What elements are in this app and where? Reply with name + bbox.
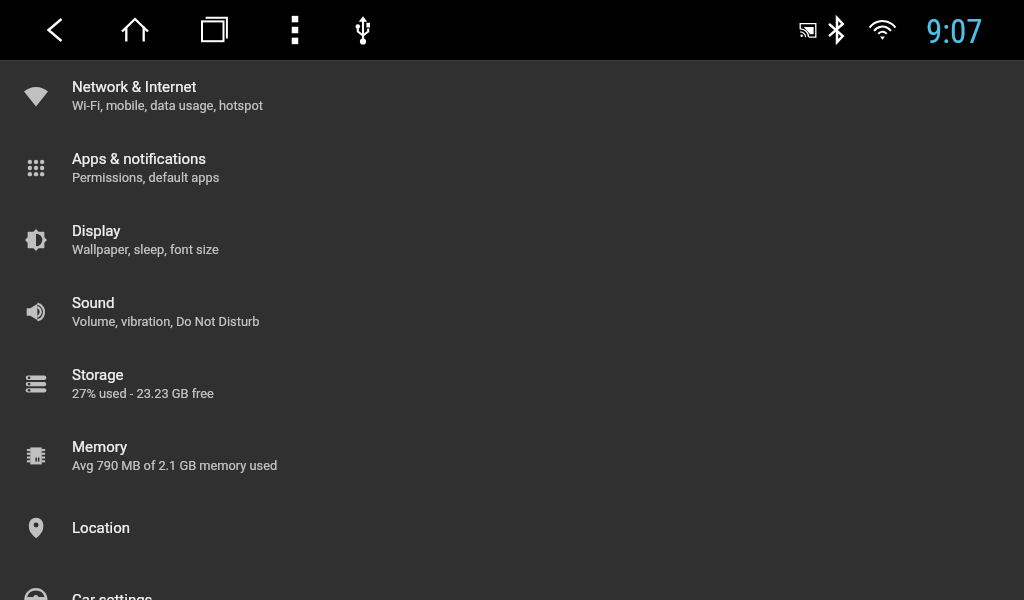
- staticText: Network & Internet: [72, 78, 197, 96]
- staticText: Wi-Fi, mobile, data usage, hotspot: [72, 98, 263, 113]
- button[interactable]: Bluetooth: [825, 15, 849, 45]
- staticText: Apps & notifications: [72, 150, 206, 168]
- button[interactable]: Home: [110, 8, 160, 52]
- button[interactable]: Display: [0, 204, 1024, 276]
- button[interactable]: Cast: [796, 19, 820, 41]
- button[interactable]: More options: [270, 8, 320, 52]
- staticText: Permissions, default apps: [72, 170, 220, 185]
- staticText: 27% used - 23.23 GB free: [72, 386, 214, 401]
- button[interactable]: Location: [0, 492, 1024, 564]
- staticText: Sound: [72, 294, 115, 312]
- button[interactable]: Back: [30, 8, 80, 52]
- staticText: Volume, vibration, Do Not Disturb: [72, 314, 260, 329]
- staticText: Memory: [72, 438, 128, 456]
- button[interactable]: Memory: [0, 420, 1024, 492]
- staticText: Wallpaper, sleep, font size: [72, 242, 219, 257]
- staticText: Car settings: [72, 591, 153, 600]
- button[interactable]: Recent apps: [190, 8, 240, 52]
- button[interactable]: Sound: [0, 276, 1024, 348]
- button[interactable]: Apps & notifications: [0, 132, 1024, 204]
- staticText: 9:07: [926, 12, 983, 51]
- button[interactable]: 9:07: [926, 12, 983, 51]
- staticText: Location: [72, 519, 131, 537]
- staticText: Storage: [72, 366, 124, 384]
- button[interactable]: Car settings: [0, 564, 1024, 600]
- button[interactable]: Wi-Fi signal: [866, 14, 899, 44]
- button[interactable]: Network & Internet: [0, 60, 1024, 132]
- button[interactable]: USB connection: [338, 8, 388, 52]
- staticText: Display: [72, 222, 121, 240]
- button[interactable]: Storage: [0, 348, 1024, 420]
- staticText: Avg 790 MB of 2.1 GB memory used: [72, 458, 278, 473]
